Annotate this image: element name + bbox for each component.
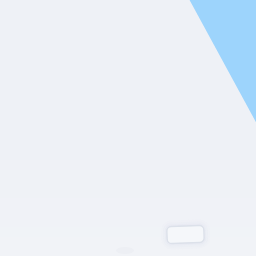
button[interactable]: Card — [0, 0, 256, 256]
other: Decorative background accent — [0, 0, 256, 256]
